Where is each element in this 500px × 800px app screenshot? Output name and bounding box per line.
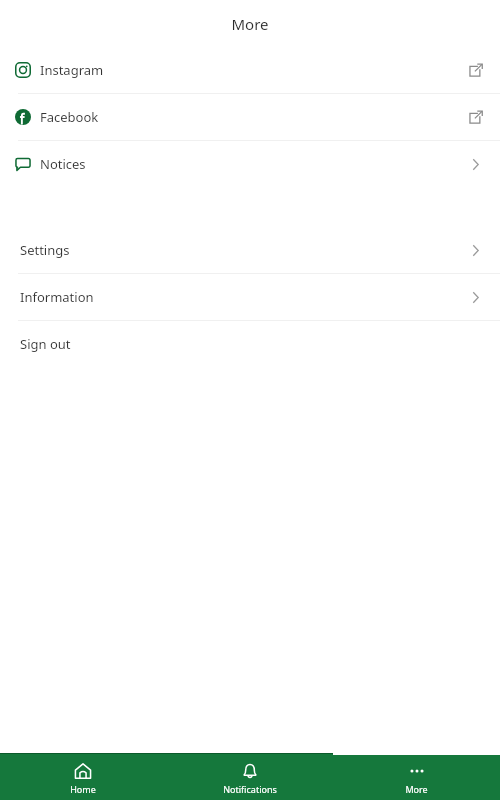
staticText: Notices [40,155,86,173]
button[interactable]: Instagram [0,47,500,93]
other: Open Instagram [464,59,486,81]
staticText: More [231,14,269,34]
button[interactable]: More [333,755,500,800]
staticText: Instagram [40,61,104,79]
staticText: Home [70,783,96,795]
button[interactable]: Notifications [166,755,333,800]
other: Notices [464,153,486,175]
button[interactable]: Facebook [0,94,500,140]
staticText: Sign out [20,335,71,353]
staticText: Facebook [40,108,99,126]
button[interactable]: Information [0,274,500,320]
staticText: Settings [20,241,70,259]
button[interactable]: Home [0,755,166,800]
other: Open Facebook [464,106,486,128]
other: Settings [464,239,486,261]
button[interactable]: Sign out [0,321,500,367]
button[interactable]: Settings [0,227,500,273]
button[interactable]: Notices [0,141,500,187]
staticText: More [405,783,428,795]
staticText: Information [20,288,94,306]
staticText: Notifications [223,783,277,795]
other: Information [464,286,486,308]
